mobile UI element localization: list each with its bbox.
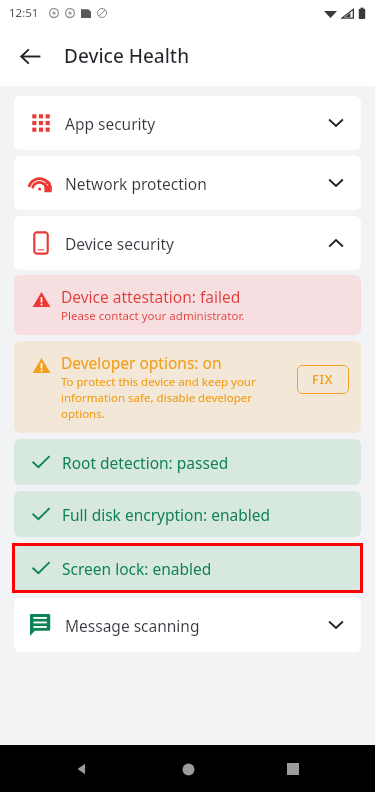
button[interactable]: Back	[59, 746, 105, 792]
button[interactable]: Developer options: on	[14, 341, 361, 433]
staticText: 12:51	[9, 5, 39, 21]
button[interactable]: Screen lock: enabled	[14, 545, 361, 591]
staticText: Message scanning	[65, 615, 200, 636]
staticText: To protect this device and keep your inf…	[61, 374, 289, 422]
staticText: Screen lock: enabled	[62, 558, 212, 579]
button[interactable]: Device security	[14, 216, 361, 270]
button[interactable]: Full disk encryption: enabled	[14, 491, 361, 537]
button[interactable]: App security	[14, 96, 361, 150]
other: Expand	[325, 172, 347, 194]
staticText: Developer options: on	[61, 352, 222, 373]
staticText: Device attestation: failed	[61, 286, 241, 307]
other: Expand	[325, 112, 347, 134]
button[interactable]: FIX	[297, 365, 349, 394]
staticText: Please contact your administrator.	[61, 308, 245, 324]
staticText: Network protection	[65, 173, 207, 194]
staticText: Full disk encryption: enabled	[62, 504, 271, 525]
button[interactable]: Message scanning	[14, 598, 361, 652]
staticText: Root detection: passed	[62, 452, 229, 473]
button[interactable]: Network protection	[14, 156, 361, 210]
other: Collapse	[325, 232, 347, 254]
staticText: FIX	[312, 371, 334, 388]
button[interactable]: Back	[8, 34, 52, 78]
staticText: App security	[65, 113, 156, 134]
button[interactable]: Recents	[270, 746, 316, 792]
staticText: Device security	[65, 233, 174, 254]
button[interactable]: Device attestation: failed	[14, 275, 361, 335]
button[interactable]: Home	[165, 746, 211, 792]
button[interactable]: Root detection: passed	[14, 439, 361, 485]
other: Expand	[325, 614, 347, 636]
staticText: Device Health	[64, 43, 190, 69]
